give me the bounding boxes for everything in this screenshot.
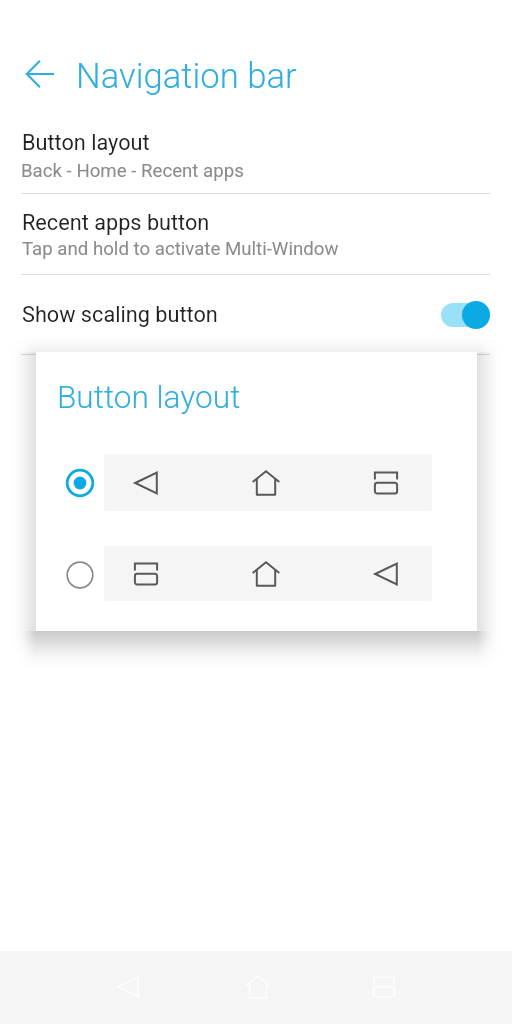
staticText: Show scaling button xyxy=(22,302,218,327)
button[interactable]: Back Home Recent apps layout xyxy=(36,442,477,523)
button[interactable]: Recent apps Home Back layout xyxy=(36,534,477,615)
staticText: Back - Home - Recent apps xyxy=(21,160,244,182)
button[interactable]: Show scaling button toggle xyxy=(433,294,497,336)
staticText: Recent apps button xyxy=(22,210,210,235)
button[interactable]: Back xyxy=(17,51,63,97)
staticText: Button layout xyxy=(57,379,241,416)
staticText: Navigation bar xyxy=(76,56,297,97)
staticText: Tap and hold to activate Multi-Window xyxy=(22,238,339,260)
staticText: Button layout xyxy=(22,130,150,155)
